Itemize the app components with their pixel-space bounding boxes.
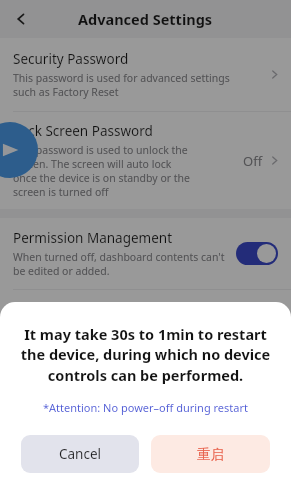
staticText: This password is used to unlock the scre… <box>13 143 191 199</box>
staticText: *Attention: No power–off during restart <box>16 400 275 415</box>
button[interactable]: 重启 <box>151 435 270 473</box>
staticText: This password is used for advanced setti… <box>13 71 230 99</box>
staticText: When turned off, dashboard contents can'… <box>13 250 225 278</box>
staticText: Lock Screen Password <box>13 122 153 140</box>
button[interactable]: Security Password <box>0 38 291 111</box>
staticText: Cancel <box>59 445 102 463</box>
button[interactable]: Lock Screen Password <box>0 112 291 209</box>
staticText: 重启 <box>197 446 224 463</box>
staticText: It may take 30s to 1min to restart the d… <box>20 324 271 386</box>
staticText: Permission Management <box>13 229 173 247</box>
staticText: Off <box>243 152 263 170</box>
button[interactable]: Assistant <box>0 122 38 178</box>
staticText: Advanced Settings <box>78 9 213 29</box>
button[interactable]: Permission Management <box>0 218 291 289</box>
button[interactable]: Permission Management toggle <box>236 242 278 265</box>
button[interactable]: Base Type <box>0 290 291 336</box>
staticText: Security Password <box>13 50 129 68</box>
button[interactable]: Cancel <box>21 435 139 473</box>
button[interactable]: Back <box>6 4 36 34</box>
